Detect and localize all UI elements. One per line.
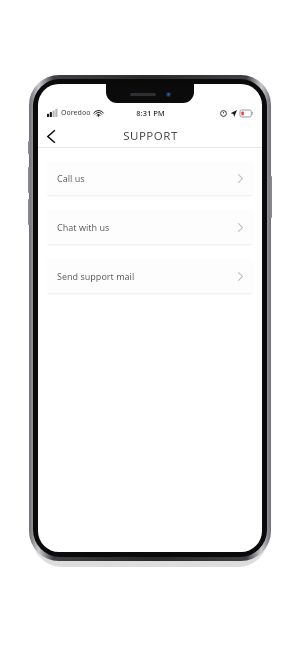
staticText: Ooredoo — [61, 108, 91, 118]
staticText: SUPPORT — [123, 128, 178, 144]
staticText: Call us — [57, 172, 238, 184]
button[interactable]: Chat with us — [46, 210, 254, 244]
staticText: Chat with us — [57, 221, 238, 233]
button[interactable]: Send support mail — [46, 259, 254, 293]
button[interactable]: Call us — [46, 161, 254, 195]
button[interactable]: Back — [38, 125, 64, 147]
staticText: 8:31 PM — [136, 108, 165, 118]
staticText: Send support mail — [57, 270, 238, 282]
